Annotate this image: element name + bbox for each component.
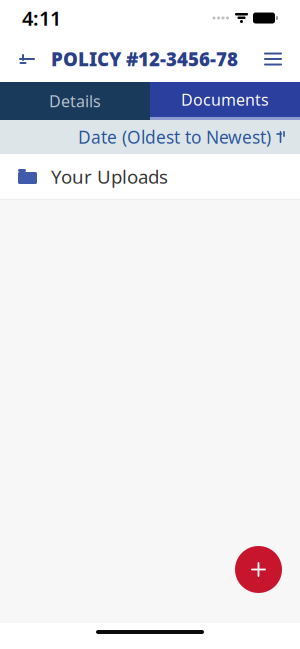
staticText: 4:11 xyxy=(22,5,61,31)
button[interactable]: Add document xyxy=(235,546,282,593)
button[interactable]: Details xyxy=(0,82,150,120)
button[interactable]: Documents xyxy=(150,82,300,120)
button[interactable]: Your Uploads xyxy=(0,154,300,199)
staticText: Documents xyxy=(181,89,269,110)
button[interactable]: Back xyxy=(5,38,49,80)
button[interactable]: Date (Oldest to Newest) xyxy=(0,120,300,154)
staticText: Date (Oldest to Newest) xyxy=(78,125,271,148)
staticText: Your Uploads xyxy=(51,164,168,189)
staticText: Details xyxy=(49,90,101,112)
button[interactable]: Menu xyxy=(251,38,295,80)
staticText: POLICY #12-3456-78 xyxy=(51,47,238,71)
